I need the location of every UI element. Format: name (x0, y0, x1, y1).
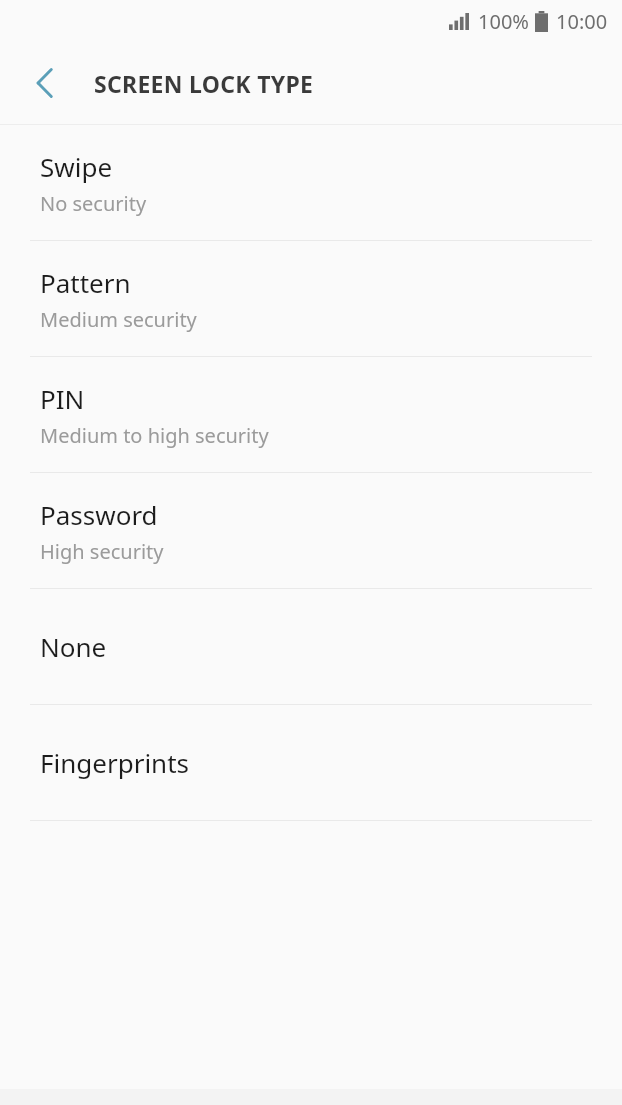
staticText: SCREEN LOCK TYPE (94, 68, 314, 99)
staticText: Swipe (40, 149, 113, 184)
button[interactable]: Password (0, 473, 622, 588)
button[interactable]: Fingerprints (0, 705, 622, 820)
button[interactable]: Pattern (0, 241, 622, 356)
staticText: Pattern (40, 265, 131, 300)
staticText: PIN (40, 381, 85, 416)
button[interactable]: Swipe (0, 125, 622, 240)
button[interactable]: None (0, 589, 622, 704)
button[interactable]: Back (16, 55, 72, 111)
staticText: Password (40, 497, 158, 532)
button[interactable]: PIN (0, 357, 622, 472)
staticText: Fingerprints (40, 745, 190, 780)
staticText: 10:00 (556, 8, 608, 35)
staticText: Medium security (40, 306, 197, 333)
staticText: None (40, 629, 107, 664)
staticText: No security (40, 190, 147, 217)
staticText: Medium to high security (40, 422, 269, 449)
staticText: High security (40, 538, 164, 565)
staticText: 100% (478, 8, 529, 35)
